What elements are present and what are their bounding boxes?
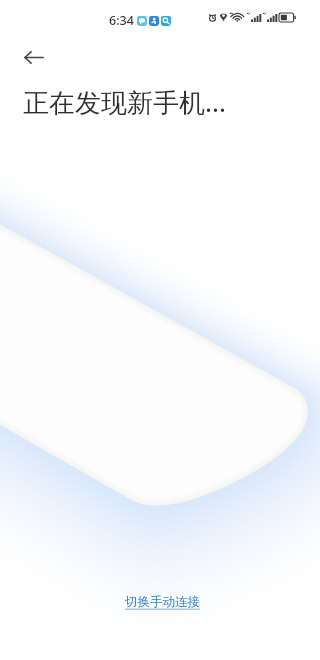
button[interactable]: Back [13, 37, 53, 77]
staticText: 正在发现新手机... [23, 84, 226, 120]
staticText: 6:34 [109, 12, 134, 29]
button[interactable]: 切换手动连接 [121, 590, 204, 614]
staticText: 切换手动连接 [125, 594, 200, 610]
